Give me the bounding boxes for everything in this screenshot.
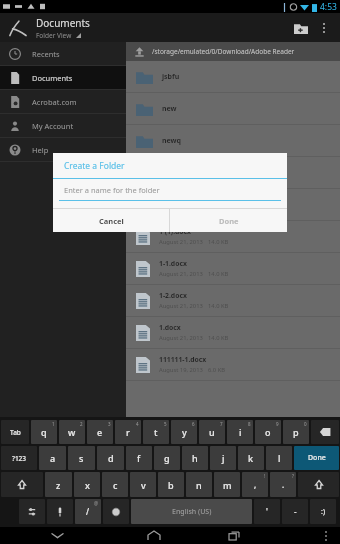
button[interactable]: g [154,446,180,470]
staticText: a [50,452,56,464]
staticText: 14.0 KB [208,334,229,342]
button[interactable]: d [97,446,124,470]
staticText: b [168,479,174,491]
button[interactable]: :) [310,499,336,524]
button[interactable]: Acrobat.com [0,90,126,113]
button[interactable]: ' [254,499,280,524]
staticText: August 21, 2013 [159,334,203,342]
button[interactable]: n [186,472,212,497]
staticText: . [282,479,285,490]
button[interactable]: Open navigation drawer [6,16,30,40]
staticText: 6.0 KB [208,366,226,374]
staticText: 7 [220,421,223,427]
button[interactable]: Shift [1,472,43,497]
staticText: - [294,506,297,517]
button[interactable]: Done [294,446,339,470]
button[interactable]: newq [126,125,340,156]
button[interactable]: jsbfu [126,61,340,92]
staticText: , [254,479,257,490]
staticText: 2 [80,421,83,427]
staticText: t [154,426,158,438]
staticText: r [126,426,130,438]
staticText: g [164,452,170,464]
button[interactable]: f [126,446,152,470]
button[interactable]: w [59,420,85,444]
button[interactable]: More options [316,527,336,544]
button[interactable]: - [282,499,308,524]
staticText: u [209,426,215,438]
button[interactable]: My Account [0,114,126,137]
button[interactable]: 1-2.docx [126,285,340,316]
staticText: k [248,452,254,464]
button[interactable]: p [283,420,309,444]
button[interactable]: z [45,472,72,497]
button[interactable]: Backspace [311,420,339,444]
button[interactable]: Home [139,527,169,544]
staticText: My Account [32,121,74,131]
button[interactable]: Cancel [53,209,169,232]
button[interactable]: i [227,420,253,444]
button[interactable]: k [238,446,264,470]
button[interactable]: c [102,472,128,497]
button[interactable]: r [115,420,141,444]
button[interactable]: o [255,420,281,444]
button[interactable]: m [214,472,240,497]
button[interactable]: s [68,446,95,470]
staticText: p [293,426,299,438]
staticText: 4 [136,421,139,427]
button[interactable]: h [182,446,208,470]
button[interactable] [126,157,340,188]
button[interactable]: /storage/emulated/0/Download/Adobe Reade… [126,42,340,61]
button[interactable]: j [210,446,236,470]
button[interactable]: . [270,472,296,497]
button[interactable]: 111111-1.docx [126,349,340,380]
button[interactable]: Documents [36,16,288,40]
button[interactable]: a [39,446,66,470]
button[interactable]: 1.docx [126,317,340,348]
button[interactable] [126,189,340,220]
button[interactable]: y [171,420,197,444]
staticText: Done [308,453,326,463]
button[interactable]: Keyboard settings [19,499,45,524]
staticText: i [239,426,242,438]
staticText: f [137,452,141,464]
button[interactable]: Done [170,209,287,232]
button[interactable]: new [126,93,340,124]
staticText: 1 (1).docx [159,227,192,236]
staticText: 14.0 KB [208,270,229,278]
button[interactable]: t [143,420,169,444]
button[interactable]: 1-1.docx [126,253,340,284]
staticText: 1-2.docx [159,291,187,300]
button[interactable]: More options [314,18,334,38]
button[interactable]: Hide keyboard [42,527,72,544]
button[interactable]: Recents [0,42,126,65]
staticText: e [97,426,103,438]
button[interactable]: v [130,472,156,497]
button[interactable]: Help [0,138,126,161]
button[interactable]: b [158,472,184,497]
button[interactable]: Shift [298,472,339,497]
button[interactable]: Change language [103,499,129,524]
button[interactable]: e [87,420,113,444]
button[interactable]: q [31,420,57,444]
staticText: :) [321,507,326,517]
button[interactable]: 1 (1).docx [126,221,340,252]
staticText: x [85,479,90,491]
button[interactable]: Tab [1,420,29,444]
button[interactable]: Documents [0,66,126,89]
button[interactable]: x [74,472,100,497]
button[interactable]: English (US) [131,499,252,524]
button[interactable]: u [199,420,225,444]
button[interactable]: , [242,472,268,497]
staticText: o [265,426,271,438]
staticText: 4:53 [320,1,337,13]
button[interactable]: Recent apps [219,527,249,544]
button[interactable]: / [75,499,101,524]
button[interactable]: ?123 [1,446,37,470]
button[interactable]: Voice input [47,499,73,524]
button[interactable]: l [266,446,292,470]
staticText: August 21, 2013 [159,302,203,310]
button[interactable]: Create new folder [288,15,314,41]
staticText: 0 [304,421,307,427]
staticText: 111111-1.docx [159,355,207,364]
